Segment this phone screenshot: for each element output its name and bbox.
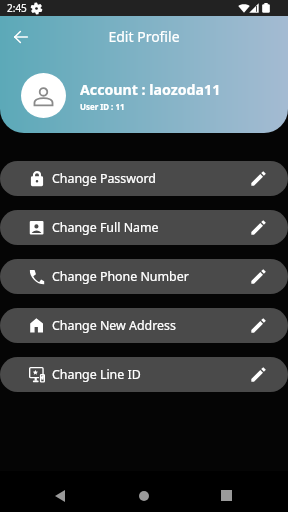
button[interactable]: Back	[55, 490, 65, 502]
staticText: Change Line ID	[52, 366, 141, 383]
button[interactable]: Change Line ID	[0, 357, 288, 392]
button[interactable]: Change Full Name	[0, 210, 288, 245]
staticText: 2:45	[7, 1, 27, 15]
button[interactable]: Edit Change Phone Number	[244, 262, 274, 292]
button[interactable]: Edit Change Line ID	[244, 360, 274, 390]
staticText: User ID : 11	[80, 102, 125, 113]
button[interactable]: Change Password	[0, 161, 288, 196]
staticText: Change Full Name	[52, 219, 159, 236]
staticText: Change Password	[52, 170, 156, 187]
button[interactable]: Edit Change New Address	[244, 311, 274, 341]
button[interactable]: Edit Change Password	[244, 164, 274, 194]
staticText: Change New Address	[52, 317, 176, 334]
button[interactable]: Back	[12, 28, 29, 45]
staticText: Account : laozoda11	[80, 80, 221, 99]
staticText: Change Phone Number	[52, 268, 189, 285]
staticText: Edit Profile	[108, 27, 180, 46]
button[interactable]: Home	[139, 491, 149, 501]
button[interactable]: Edit Change Full Name	[244, 213, 274, 243]
button[interactable]: Change Phone Number	[0, 259, 288, 294]
button[interactable]: Change New Address	[0, 308, 288, 343]
